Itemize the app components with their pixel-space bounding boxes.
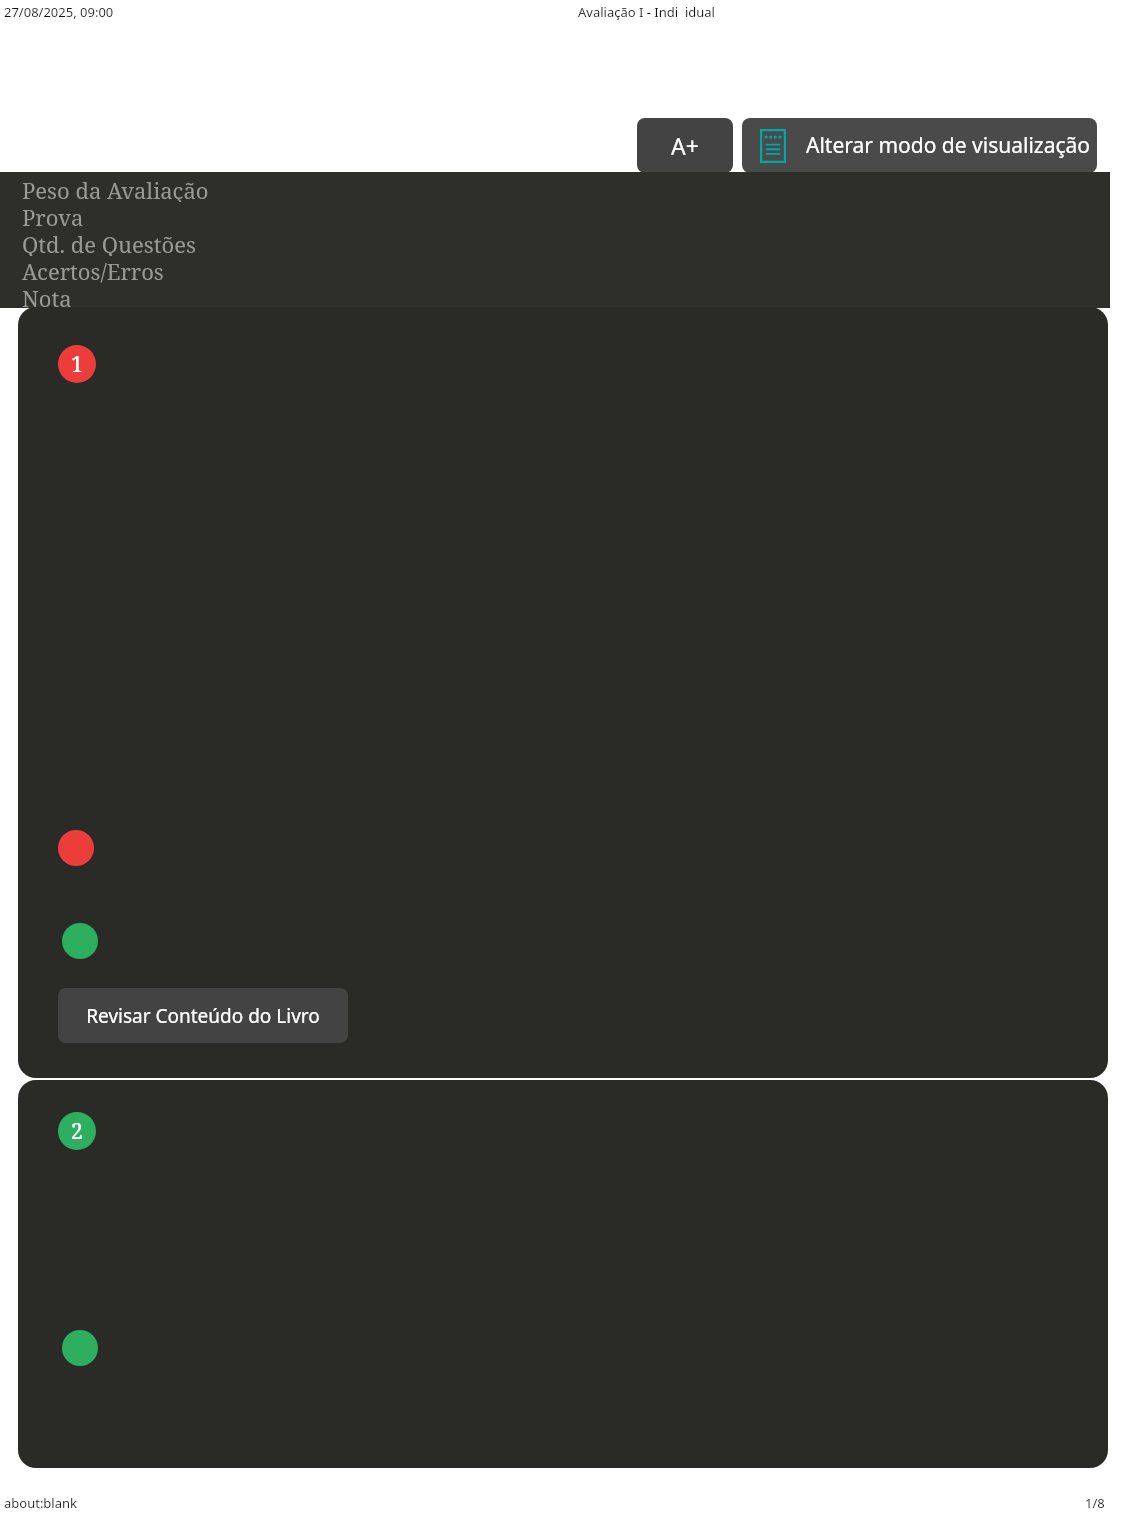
button[interactable]: Alterar modo de visualização [742, 118, 1097, 173]
staticText: Peso da Avaliação [22, 175, 209, 202]
staticText: Qtd. de Questões [22, 229, 196, 256]
button[interactable]: 2 [18, 1080, 1108, 1468]
staticText: A+ [671, 130, 699, 161]
staticText: 2 [71, 1117, 83, 1146]
staticText: Revisar Conteúdo do Livro [86, 1003, 320, 1029]
button[interactable]: A+ [637, 118, 733, 173]
staticText: about:blank [4, 1494, 77, 1512]
staticText: Prova [22, 202, 84, 229]
staticText: 1/8 [1085, 1494, 1105, 1512]
staticText: Acertos/Erros [22, 256, 164, 283]
staticText: Alterar modo de visualização [806, 131, 1091, 160]
staticText: Nota [22, 283, 72, 308]
staticText: 27/08/2025, 09:00 [4, 3, 114, 21]
staticText: 1 [71, 350, 83, 379]
button[interactable]: Revisar Conteúdo do Livro [58, 988, 348, 1043]
button[interactable]: 1 [18, 307, 1108, 1078]
other: Alterar modo de visualização [760, 129, 786, 163]
staticText: Avaliação I - Indi idual [578, 3, 715, 21]
